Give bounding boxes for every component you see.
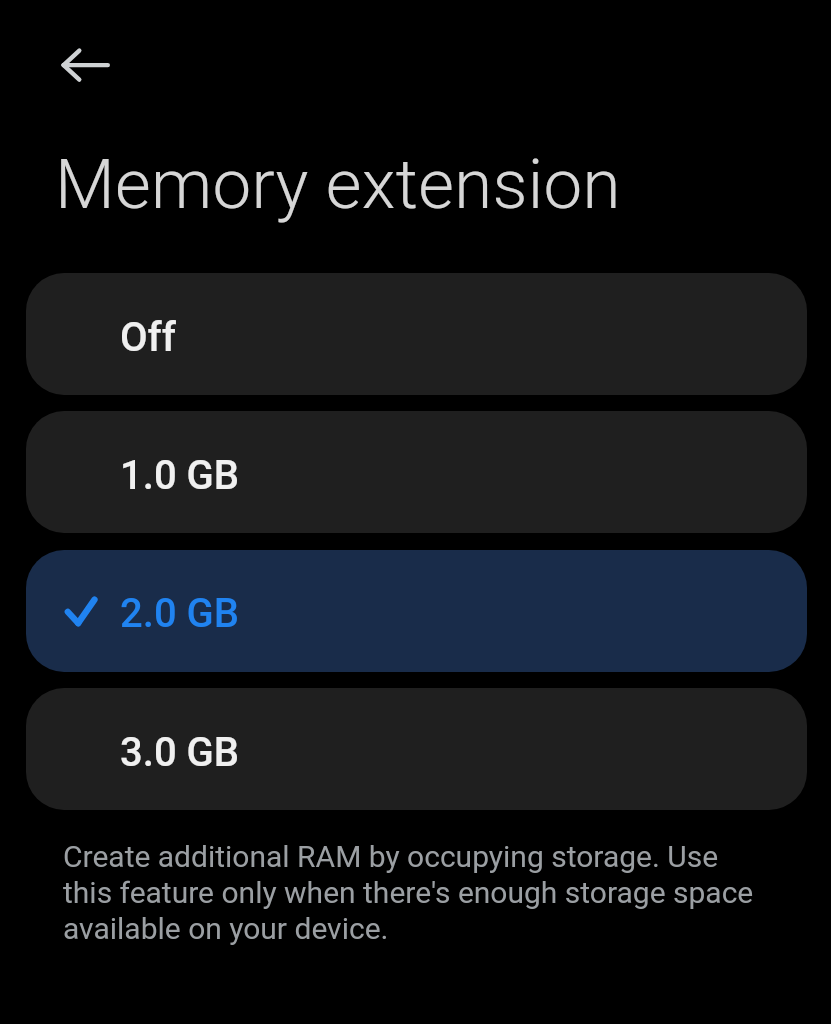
button[interactable]: Back xyxy=(38,40,88,90)
staticText: Off xyxy=(120,314,176,361)
button[interactable]: 3.0 GB xyxy=(26,688,807,810)
button[interactable]: 2.0 GB xyxy=(26,550,807,672)
button[interactable]: Off xyxy=(26,273,807,395)
staticText: Memory extension xyxy=(55,144,621,225)
staticText: 1.0 GB xyxy=(120,452,240,499)
button[interactable]: 1.0 GB xyxy=(26,411,807,533)
staticText: 2.0 GB xyxy=(120,590,240,637)
staticText: Create additional RAM by occupying stora… xyxy=(63,839,823,946)
staticText: 3.0 GB xyxy=(120,729,240,776)
